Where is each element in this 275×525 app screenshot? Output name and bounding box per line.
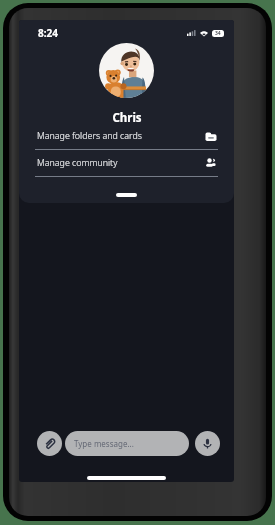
staticText: Type message... bbox=[74, 438, 134, 449]
button[interactable]: Attach file bbox=[37, 431, 62, 456]
button[interactable]: Manage community bbox=[19, 150, 234, 176]
staticText: 8:24 bbox=[38, 26, 58, 40]
other: Manage community bbox=[205, 157, 217, 169]
staticText: Chris bbox=[112, 110, 142, 126]
button[interactable]: Type message... bbox=[65, 431, 189, 456]
staticText: 34 bbox=[215, 30, 221, 37]
staticText: Manage community bbox=[37, 156, 118, 168]
button[interactable]: Record voice message bbox=[195, 431, 220, 456]
button[interactable]: Manage folders and cards bbox=[19, 123, 234, 149]
staticText: Manage folders and cards bbox=[37, 129, 142, 141]
other: Manage folders and cards bbox=[205, 130, 217, 142]
